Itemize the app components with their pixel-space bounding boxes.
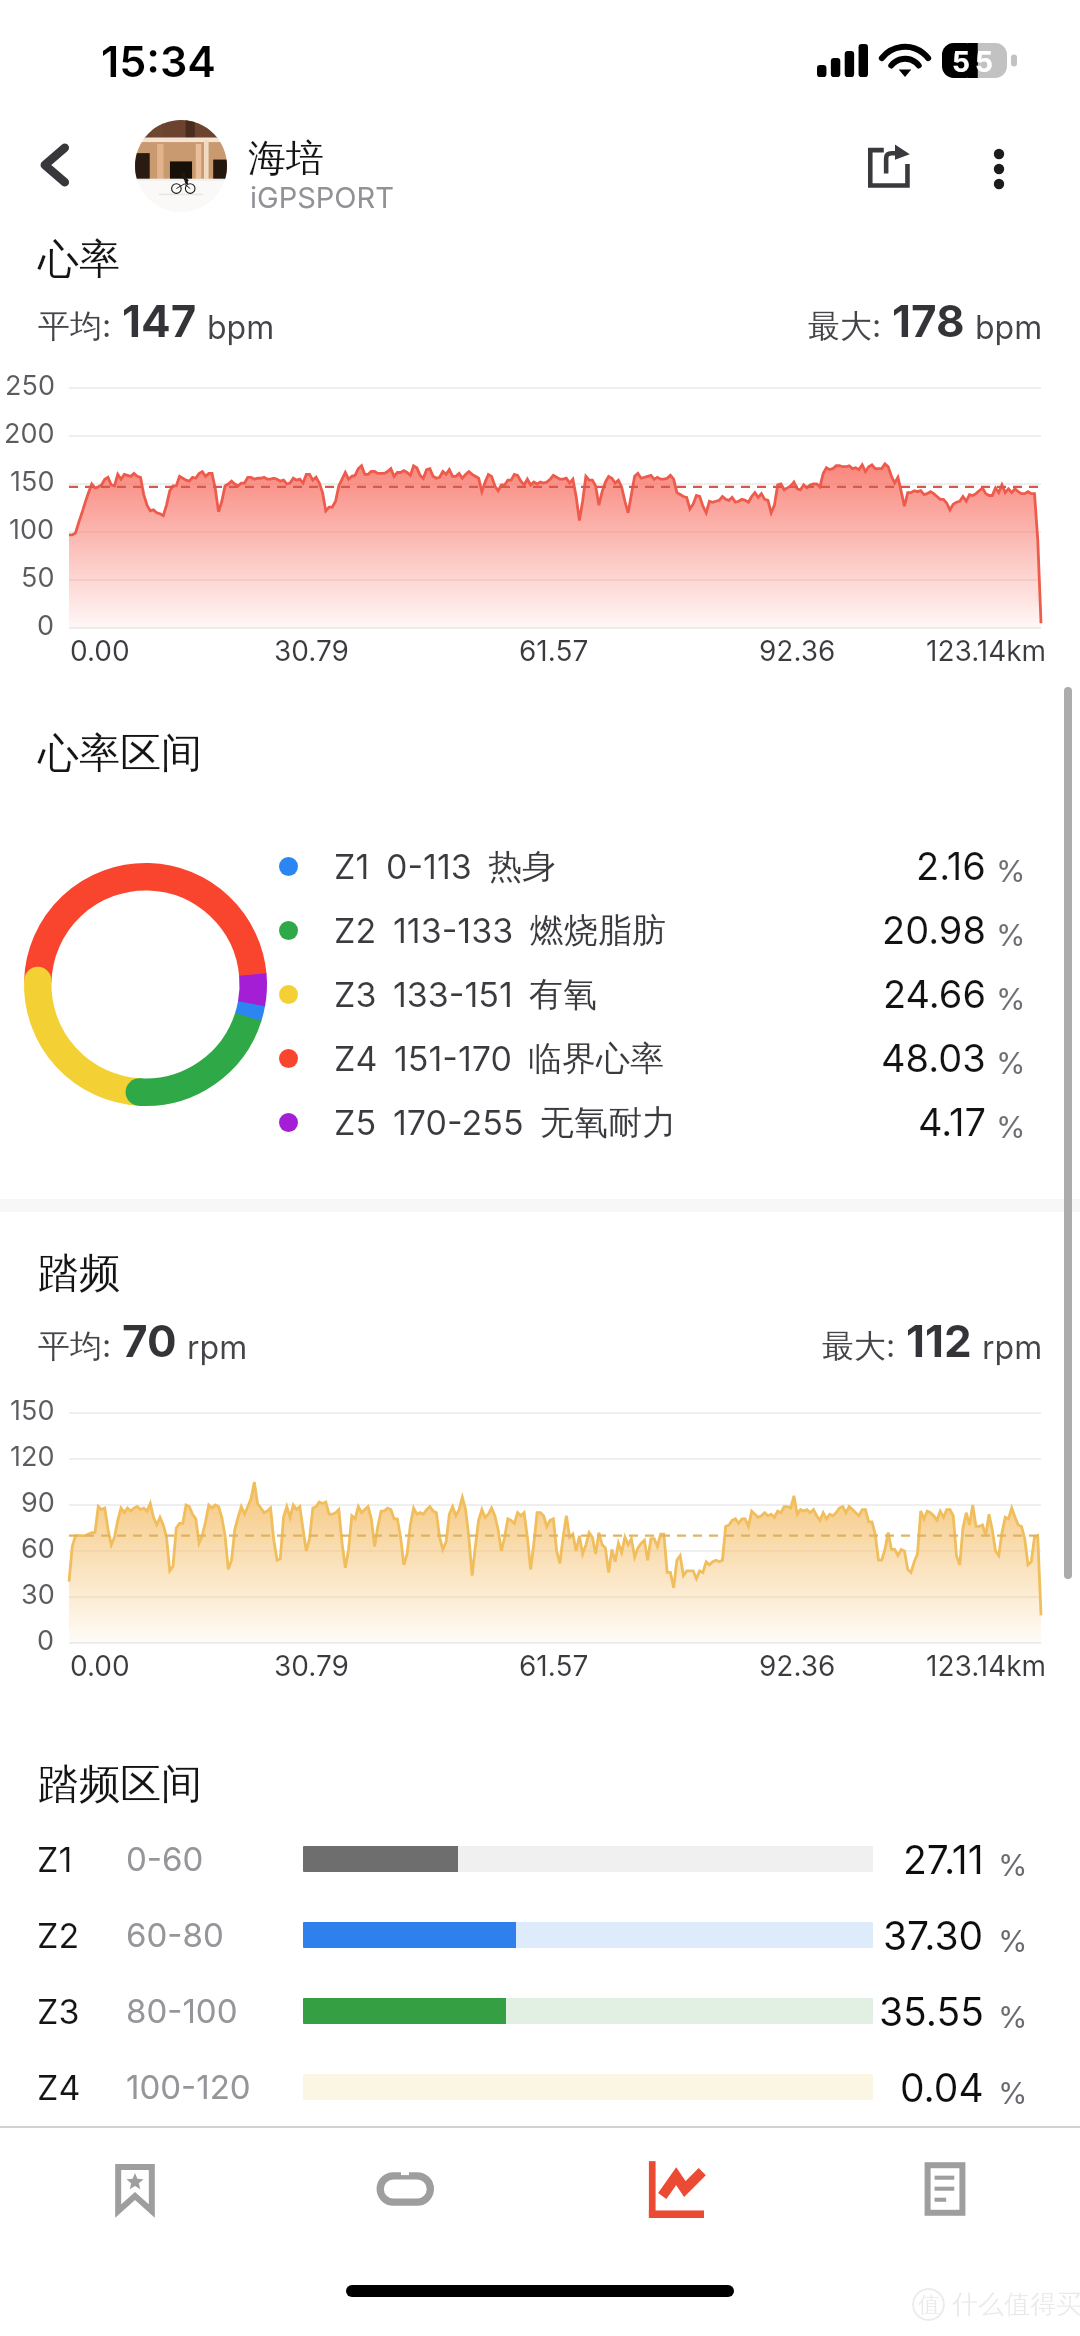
staticText: 0 [37,609,55,642]
staticText: 150 [10,465,55,498]
staticText: 心率 [38,234,120,286]
staticText: 临界心率 [528,1037,664,1080]
staticText: 平均: [38,1326,112,1367]
staticText: 27.11 [903,1836,984,1883]
staticText: 92.36 [759,1649,836,1683]
staticText: 92.36 [759,634,836,668]
staticText: Z4 [37,2067,81,2108]
staticText: 5 [975,45,993,79]
staticText: 平均: [38,306,112,347]
staticText: Z4 [334,1038,378,1079]
staticText: Z5 [334,1102,377,1143]
staticText: Z2 [37,1915,80,1956]
button[interactable]: Share [845,123,933,211]
staticText: 200 [4,417,55,450]
staticText: 15:34 [101,35,216,87]
staticText: 最大: [808,306,882,347]
staticText: 123.14km [926,634,1047,668]
staticText: Z1 [37,1839,73,1880]
staticText: 150 [10,1394,55,1427]
staticText: 30.79 [274,1649,349,1683]
staticText: 什么值得买 [952,2288,1080,2321]
staticText: rpm [982,1328,1043,1367]
staticText: Z3 [37,1991,80,2032]
staticText: 0.00 [70,1649,130,1683]
staticText: 70 [122,1314,177,1367]
staticText: 30.79 [274,634,349,668]
button[interactable]: Back [20,129,92,201]
staticText: % [996,1045,1026,1081]
staticText: 0 [37,1624,55,1657]
staticText: 120 [10,1440,55,1473]
staticText: 0-113 [386,846,472,887]
staticText: 113-133 [393,910,514,951]
staticText: 151-170 [394,1038,512,1079]
staticText: 踏频 [38,1248,120,1300]
staticText: 有氧 [529,973,597,1016]
staticText: 5 [952,45,970,79]
staticText: 123.14km [926,1649,1047,1683]
staticText: 170-255 [393,1102,524,1143]
staticText: 30 [21,1578,55,1611]
staticText: % [998,1847,1028,1883]
staticText: Z3 [334,974,377,1015]
staticText: rpm [187,1328,248,1367]
staticText: 0-60 [126,1839,204,1879]
staticText: 燃烧脂肪 [530,909,666,952]
staticText: 最大: [822,1326,896,1367]
staticText: 37.30 [883,1912,984,1959]
staticText: 60 [21,1532,55,1565]
button[interactable]: More options [956,126,1042,212]
staticText: 61.57 [519,1649,589,1683]
button[interactable]: Records [810,2127,1080,2245]
staticText: Z2 [334,910,377,951]
button[interactable]: Charts [540,2127,810,2245]
staticText: 50 [21,561,55,594]
staticText: bpm [975,308,1043,347]
staticText: 250 [5,369,55,402]
staticText: 心率区间 [38,728,202,780]
staticText: 60-80 [126,1915,224,1955]
staticText: % [996,853,1026,889]
staticText: 2.16 [916,843,986,889]
staticText: 178 [892,294,965,347]
staticText: 147 [122,294,197,347]
staticText: 35.55 [879,1988,984,2035]
staticText: % [998,2075,1028,2111]
staticText: % [996,981,1026,1017]
staticText: 热身 [488,845,556,888]
staticText: 80-100 [126,1991,238,2031]
staticText: 0.04 [900,2064,984,2111]
staticText: 133-151 [393,974,513,1015]
staticText: 90 [21,1486,55,1519]
staticText: % [998,1923,1028,1959]
staticText: 无氧耐力 [540,1101,676,1144]
button[interactable]: Bookmarks [0,2127,270,2245]
staticText: 4.17 [918,1099,986,1145]
button[interactable]: Devices [270,2127,540,2245]
staticText: 海培 [248,134,324,182]
staticText: % [998,1999,1028,2035]
staticText: % [996,917,1026,953]
staticText: 0.00 [70,634,130,668]
staticText: 112 [906,1314,972,1367]
staticText: 值 [918,2291,940,2319]
staticText: bpm [207,308,275,347]
staticText: 100 [9,513,55,546]
staticText: % [996,1109,1026,1145]
staticText: 48.03 [881,1035,986,1081]
staticText: Z1 [334,846,370,887]
staticText: 踏频区间 [38,1759,202,1811]
staticText: iGPSPORT [250,180,394,215]
staticText: 24.66 [883,971,986,1017]
staticText: 20.98 [882,907,986,953]
staticText: 100-120 [126,2067,251,2107]
staticText: 61.57 [519,634,589,668]
